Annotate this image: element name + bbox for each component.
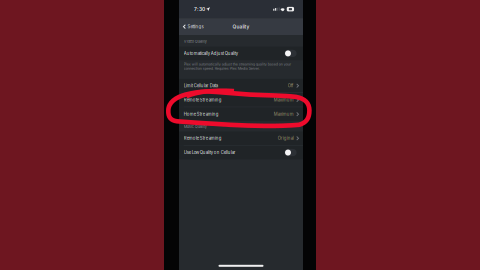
button[interactable]: Home Streaming — [179, 107, 303, 121]
button[interactable]: Limit Cellular Data — [179, 79, 303, 93]
staticText: Maximum — [274, 97, 294, 103]
staticText: Settings — [187, 24, 203, 29]
staticText: Off — [288, 83, 294, 88]
staticText: Use Low Quality on Cellular — [184, 150, 236, 155]
staticText: Home Streaming — [184, 112, 219, 117]
button[interactable]: Settings — [179, 20, 206, 34]
staticText: Remote Streaming — [184, 136, 222, 141]
button[interactable]: Use Low Quality on Cellular — [284, 149, 297, 156]
staticText: Maximum — [274, 112, 294, 117]
staticText: Automatically Adjust Quality — [184, 51, 238, 56]
button[interactable]: Remote Streaming — [179, 93, 303, 107]
staticText: 7:30 — [194, 6, 205, 12]
staticText: Limit Cellular Data — [184, 83, 218, 88]
staticText: Music Quality — [184, 124, 207, 129]
staticText: Video Quality — [184, 39, 207, 44]
staticText: Original — [278, 136, 294, 141]
staticText: Remote Streaming — [184, 97, 222, 103]
staticText: Quality — [232, 24, 249, 29]
button[interactable]: Automatically Adjust Quality — [284, 50, 297, 57]
button[interactable]: Remote Streaming — [179, 131, 303, 145]
staticText: Plex will automatically adjust the strea… — [184, 62, 291, 71]
